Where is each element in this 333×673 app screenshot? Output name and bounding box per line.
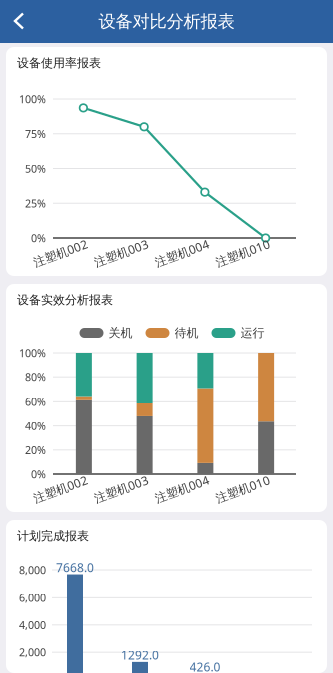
staticText: 4,000 xyxy=(19,618,46,632)
staticText: 关机 xyxy=(108,326,132,340)
staticText: 1292.0 xyxy=(121,647,159,663)
staticText: 0% xyxy=(31,467,46,481)
staticText: 0% xyxy=(31,231,46,245)
staticText: 设备使用率报表 xyxy=(17,56,101,70)
button[interactable]: Back xyxy=(0,0,44,43)
staticText: 426.0 xyxy=(189,659,220,673)
staticText: 待机 xyxy=(174,326,198,340)
staticText: 20% xyxy=(25,443,46,457)
staticText: 注塑机010 xyxy=(214,481,271,497)
staticText: 注塑机002 xyxy=(32,481,89,497)
staticText: 注塑机010 xyxy=(214,245,271,261)
staticText: 100% xyxy=(19,346,46,360)
staticText: 40% xyxy=(25,418,46,433)
staticText: 80% xyxy=(25,370,46,384)
staticText: 75% xyxy=(25,127,46,141)
staticText: 50% xyxy=(25,161,46,176)
staticText: 100% xyxy=(19,92,46,106)
staticText: 运行 xyxy=(240,326,264,340)
staticText: 设备对比分析报表 xyxy=(98,11,234,32)
staticText: 60% xyxy=(25,394,46,408)
staticText: 25% xyxy=(25,196,46,210)
staticText: 设备实效分析报表 xyxy=(17,293,113,307)
staticText: 计划完成报表 xyxy=(17,529,89,543)
staticText: 注塑机003 xyxy=(93,481,150,497)
staticText: 注塑机002 xyxy=(32,245,89,261)
staticText: 注塑机004 xyxy=(153,245,210,261)
staticText: 8,000 xyxy=(19,563,46,577)
staticText: 2,000 xyxy=(19,645,46,659)
staticText: 6,000 xyxy=(19,590,46,604)
staticText: 7668.0 xyxy=(56,560,94,575)
staticText: 注塑机004 xyxy=(153,481,210,497)
staticText: 注塑机003 xyxy=(93,245,150,261)
